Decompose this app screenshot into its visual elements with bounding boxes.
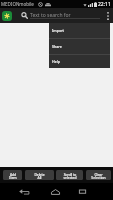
button[interactable]: Add Item bbox=[3, 170, 22, 180]
button[interactable]: Home bbox=[46, 183, 65, 200]
button[interactable]: More options bbox=[102, 8, 113, 23]
staticText: Scroll to selected bbox=[63, 172, 77, 180]
staticText: Delete All bbox=[34, 172, 45, 180]
button[interactable]: Recent apps bbox=[73, 183, 92, 200]
button[interactable]: Back bbox=[14, 183, 34, 200]
staticText: Clear Selection bbox=[91, 172, 106, 180]
button[interactable]: Import bbox=[49, 23, 110, 38]
button[interactable]: Scroll to selected bbox=[56, 170, 83, 180]
button[interactable]: Text to search for bbox=[30, 8, 105, 23]
staticText: Add Item bbox=[9, 172, 17, 180]
staticText: 22:11 bbox=[98, 1, 111, 8]
button[interactable]: Help bbox=[49, 55, 110, 68]
staticText: Import bbox=[52, 28, 64, 33]
button[interactable]: Delete All bbox=[25, 170, 54, 180]
button[interactable]: App logo bbox=[2, 11, 12, 21]
button[interactable]: Clear Selection bbox=[86, 170, 111, 180]
button[interactable]: Share bbox=[49, 39, 110, 54]
button[interactable]: Search bbox=[20, 11, 29, 20]
staticText: Help bbox=[52, 59, 60, 64]
staticText: Text to search for bbox=[30, 12, 71, 19]
staticText: MEDIONmobile bbox=[1, 1, 34, 7]
staticText: Share bbox=[52, 44, 62, 49]
